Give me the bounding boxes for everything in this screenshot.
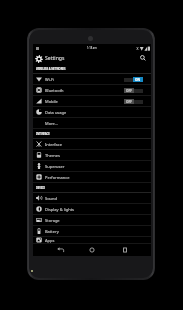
staticText: More... — [45, 121, 59, 126]
button[interactable]: Back — [54, 244, 66, 256]
staticText: Sound — [45, 196, 58, 201]
staticText: OFF — [126, 89, 133, 93]
staticText: Performance — [45, 175, 70, 180]
button[interactable]: Display & lights — [33, 204, 151, 215]
staticText: INTERFACE — [36, 132, 50, 136]
staticText: Data usage — [45, 110, 67, 115]
button[interactable]: Battery — [33, 226, 151, 237]
button[interactable]: Search — [138, 53, 148, 63]
staticText: WIRELESS & NETWORKS — [36, 67, 66, 71]
button[interactable]: Recents — [119, 244, 131, 256]
staticText: Settings — [45, 55, 65, 62]
staticText: 1:18 am — [87, 46, 97, 50]
staticText: ON — [135, 78, 141, 82]
button[interactable]: Mobile — [33, 96, 151, 107]
staticText: Mobile — [45, 99, 58, 104]
staticText: Display & lights — [45, 207, 75, 212]
staticText: OFF — [126, 100, 133, 104]
staticText: Battery — [45, 229, 59, 234]
button[interactable]: Bluetooth — [33, 85, 151, 96]
staticText: Apps — [45, 238, 55, 243]
staticText: Bluetooth — [45, 88, 64, 93]
button[interactable]: Sound — [33, 193, 151, 204]
button[interactable]: Themes — [33, 150, 151, 161]
staticText: Interface — [45, 142, 62, 147]
button[interactable]: Interface — [33, 139, 151, 150]
staticText: DEVICE — [36, 186, 45, 190]
button[interactable]: Home — [86, 244, 98, 256]
staticText: Wi-Fi — [45, 77, 55, 82]
button[interactable]: Apps — [33, 237, 151, 244]
staticText: Superuser — [45, 164, 65, 169]
button[interactable]: Storage — [33, 215, 151, 226]
button[interactable]: Settings — [34, 54, 43, 63]
button[interactable]: More... — [33, 118, 151, 129]
button[interactable]: Data usage — [33, 107, 151, 118]
button[interactable]: Performance — [33, 172, 151, 183]
staticText: Storage — [45, 218, 60, 223]
staticText: Themes — [45, 153, 60, 158]
button[interactable]: Wi-Fi — [33, 74, 151, 85]
button[interactable]: Superuser — [33, 161, 151, 172]
